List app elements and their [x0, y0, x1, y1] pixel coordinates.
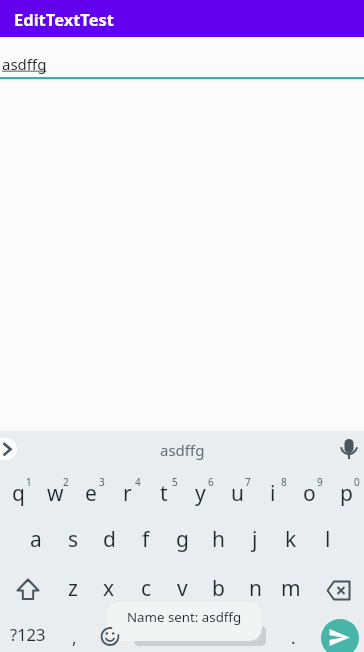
button[interactable] [321, 619, 359, 652]
staticText: y [195, 479, 206, 508]
button[interactable]: ?123 [5, 614, 51, 652]
staticText: 1 [26, 475, 32, 487]
staticText: q [12, 479, 25, 508]
button[interactable]: u [219, 471, 255, 515]
button[interactable]: , [60, 617, 88, 652]
button[interactable]: a [18, 517, 54, 561]
button[interactable]: s [55, 517, 91, 561]
staticText: m [281, 574, 301, 603]
staticText: 6 [208, 475, 214, 487]
button[interactable]: . [279, 617, 307, 652]
staticText: t [160, 479, 168, 508]
button[interactable]: r [109, 471, 145, 515]
button[interactable]: v [164, 566, 200, 610]
button[interactable]: w [37, 471, 73, 515]
staticText: l [325, 525, 331, 554]
staticText: b [212, 574, 225, 603]
button[interactable]: d [91, 517, 127, 561]
staticText: 4 [135, 475, 141, 487]
staticText: ?123 [10, 623, 46, 645]
button[interactable]: k [273, 517, 309, 561]
staticText: Name sent: asdffg [127, 608, 242, 626]
staticText: 7 [245, 475, 251, 487]
button[interactable]: j [237, 517, 273, 561]
staticText: 9 [317, 475, 323, 487]
staticText: h [212, 525, 225, 554]
staticText: g [176, 525, 189, 554]
staticText: 2 [63, 475, 69, 487]
staticText: j [252, 525, 258, 554]
staticText: EditTextTest [14, 8, 115, 30]
staticText: k [285, 525, 297, 554]
button[interactable]: x [91, 566, 127, 610]
staticText: . [291, 626, 296, 649]
button[interactable]: t [146, 471, 182, 515]
button[interactable]: e [73, 471, 109, 515]
staticText: u [231, 479, 244, 508]
staticText: v [177, 574, 188, 603]
button[interactable]: f [128, 517, 164, 561]
staticText: c [141, 574, 152, 603]
button[interactable]: z [55, 566, 91, 610]
button[interactable]: i [255, 471, 291, 515]
staticText: 0 [354, 475, 360, 487]
button[interactable] [134, 626, 266, 646]
staticText: o [303, 479, 316, 508]
staticText: s [68, 525, 79, 554]
staticText: x [103, 574, 115, 603]
staticText: n [249, 574, 262, 603]
button[interactable]: y [182, 471, 218, 515]
button[interactable]: o [291, 471, 327, 515]
button[interactable]: b [200, 566, 236, 610]
staticText: f [142, 525, 150, 554]
staticText: 3 [99, 475, 105, 487]
button[interactable]: g [164, 517, 200, 561]
staticText: 5 [172, 475, 178, 487]
staticText: w [47, 479, 64, 508]
staticText: i [270, 479, 276, 508]
staticText: e [85, 479, 97, 508]
staticText: 8 [281, 475, 287, 487]
button[interactable] [0, 438, 17, 460]
button[interactable]: p [328, 471, 364, 515]
button[interactable]: asdffg [0, 48, 364, 79]
button[interactable]: m [273, 566, 309, 610]
staticText: r [123, 479, 132, 508]
button[interactable]: l [310, 517, 346, 561]
staticText: z [68, 574, 78, 603]
button[interactable]: h [200, 517, 236, 561]
staticText: asdffg [160, 440, 205, 460]
staticText: d [103, 525, 116, 554]
staticText: p [340, 479, 353, 508]
button[interactable]: q [0, 471, 36, 515]
staticText: , [72, 626, 77, 649]
button[interactable]: c [128, 566, 164, 610]
button[interactable]: n [237, 566, 273, 610]
button[interactable]: asdffg [137, 436, 227, 464]
staticText: a [30, 525, 42, 554]
staticText: asdffg [2, 54, 47, 74]
